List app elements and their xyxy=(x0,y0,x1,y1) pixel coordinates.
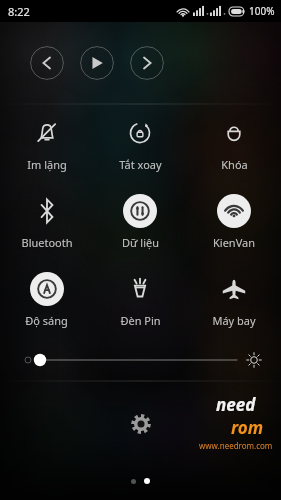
staticText: Dữ liệu xyxy=(122,235,159,250)
button[interactable]: Độ sáng xyxy=(0,261,93,339)
staticText: rom xyxy=(231,416,264,439)
button[interactable]: Khóa xyxy=(187,105,281,183)
button[interactable]: Brightness xyxy=(0,339,281,381)
staticText: Tắt xoay xyxy=(119,157,162,172)
staticText: 100% xyxy=(249,4,275,18)
staticText: Đèn Pin xyxy=(120,313,161,328)
button[interactable]: Máy bay xyxy=(187,261,281,339)
staticText: KienVan xyxy=(213,235,255,250)
button[interactable]: Tắt xoay xyxy=(93,105,187,183)
staticText: Khóa xyxy=(221,157,248,172)
staticText: Bluetooth xyxy=(21,235,73,250)
staticText: 8:22 xyxy=(8,4,30,19)
button[interactable]: Settings xyxy=(128,411,154,437)
button[interactable]: Bluetooth xyxy=(0,183,93,261)
staticText: Độ sáng xyxy=(25,313,68,328)
button[interactable]: Dữ liệu xyxy=(93,183,187,261)
button[interactable]: Đèn Pin xyxy=(93,261,187,339)
button[interactable]: Previous xyxy=(30,46,64,80)
button[interactable]: Play xyxy=(80,46,114,80)
staticText: www.needrom.com xyxy=(199,440,273,451)
staticText: Máy bay xyxy=(212,313,256,328)
button[interactable]: Im lặng xyxy=(0,105,93,183)
button[interactable]: Next xyxy=(130,46,164,80)
staticText: Im lặng xyxy=(27,157,67,172)
staticText: need xyxy=(216,393,256,416)
button[interactable]: KienVan xyxy=(187,183,281,261)
